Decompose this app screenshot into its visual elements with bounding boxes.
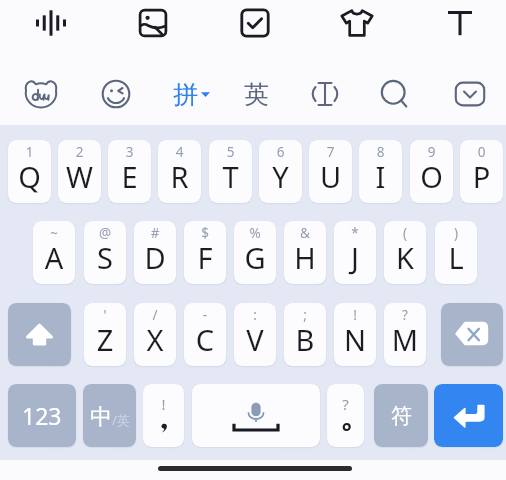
staticText: * <box>334 224 376 242</box>
button[interactable]: Search <box>368 68 420 120</box>
staticText: 5 <box>209 143 252 161</box>
staticText: ~ <box>33 224 75 242</box>
staticText: F <box>184 238 226 277</box>
button[interactable]: 1 <box>8 140 51 203</box>
staticText: Y <box>259 157 302 196</box>
staticText: $ <box>184 224 226 242</box>
button[interactable]: Space <box>192 384 320 447</box>
staticText: 中 <box>90 403 112 431</box>
button[interactable]: 7 <box>309 140 352 203</box>
staticText: A <box>33 238 75 277</box>
staticText: ? <box>327 394 364 414</box>
button[interactable]: 123 <box>8 384 76 447</box>
staticText: X <box>134 320 176 359</box>
button[interactable]: 2 <box>58 140 101 203</box>
button[interactable]: Enter <box>434 384 503 447</box>
staticText: V <box>234 320 276 359</box>
button[interactable]: ? <box>384 303 426 366</box>
staticText: 7 <box>309 143 352 161</box>
staticText: - <box>184 306 226 324</box>
staticText: N <box>334 320 376 359</box>
staticText: 0 <box>460 143 503 161</box>
button[interactable]: Cursor <box>299 68 351 120</box>
button[interactable]: ( <box>384 221 426 284</box>
staticText: C <box>184 320 226 359</box>
button[interactable]: Tasks <box>231 0 279 46</box>
staticText: @ <box>84 224 126 242</box>
button[interactable]: 英 <box>230 68 282 120</box>
button[interactable]: / <box>134 303 176 366</box>
button[interactable]: $ <box>184 221 226 284</box>
staticText: 符 <box>391 403 412 429</box>
button[interactable]: @ <box>84 221 126 284</box>
button[interactable]: 中 <box>83 384 136 447</box>
staticText: 3 <box>108 143 151 161</box>
staticText: G <box>234 238 276 277</box>
button[interactable]: # <box>134 221 176 284</box>
button[interactable]: 6 <box>259 140 302 203</box>
staticText: 9 <box>410 143 453 161</box>
button[interactable]: 3 <box>108 140 151 203</box>
staticText: # <box>134 224 176 242</box>
staticText: O <box>410 157 453 196</box>
button[interactable]: - <box>184 303 226 366</box>
button[interactable]: Images <box>129 0 177 46</box>
button[interactable]: Skin <box>333 0 381 46</box>
staticText: K <box>384 238 426 277</box>
staticText: B <box>284 320 326 359</box>
button[interactable]: ~ <box>33 221 75 284</box>
staticText: /英 <box>112 411 130 429</box>
button[interactable]: Voice input <box>27 0 75 46</box>
button[interactable]: ! <box>334 303 376 366</box>
button[interactable]: 4 <box>158 140 201 203</box>
staticText: L <box>435 238 477 277</box>
staticText: Z <box>84 320 126 359</box>
staticText: 4 <box>158 143 201 161</box>
button[interactable]: 5 <box>209 140 252 203</box>
staticText: 英 <box>244 79 269 110</box>
button[interactable]: 拼 <box>161 68 221 120</box>
button[interactable]: Text style <box>436 0 484 46</box>
button[interactable]: ? <box>327 384 364 447</box>
staticText: / <box>134 306 176 324</box>
button[interactable]: ! <box>143 384 184 447</box>
staticText: ) <box>435 224 477 242</box>
button[interactable]: ) <box>435 221 477 284</box>
button[interactable]: Backspace <box>441 303 503 366</box>
button[interactable]: Shift <box>8 303 71 366</box>
button[interactable]: : <box>234 303 276 366</box>
staticText: R <box>158 157 201 196</box>
staticText: 6 <box>259 143 302 161</box>
staticText: J <box>334 238 376 277</box>
staticText: M <box>384 320 426 359</box>
staticText: ' <box>84 306 126 324</box>
staticText: T <box>209 157 252 196</box>
staticText: 2 <box>58 143 101 161</box>
staticText: I <box>359 157 402 196</box>
staticText: Q <box>8 157 51 196</box>
button[interactable]: Emoji <box>90 68 142 120</box>
staticText: ? <box>384 306 426 324</box>
button[interactable]: % <box>234 221 276 284</box>
button[interactable]: 0 <box>460 140 503 203</box>
staticText: ! <box>143 394 184 414</box>
staticText: H <box>284 238 326 277</box>
button[interactable]: 9 <box>410 140 453 203</box>
button[interactable]: & <box>284 221 326 284</box>
staticText: 1 <box>8 143 51 161</box>
button[interactable]: Hide keyboard <box>444 68 496 120</box>
staticText: 拼 <box>173 79 198 110</box>
button[interactable]: 8 <box>359 140 402 203</box>
button[interactable]: 符 <box>374 384 428 447</box>
staticText: W <box>58 157 101 196</box>
staticText: U <box>309 157 352 196</box>
staticText: P <box>460 157 503 196</box>
button[interactable]: ; <box>284 303 326 366</box>
staticText: ! <box>334 306 376 324</box>
staticText: E <box>108 157 151 196</box>
button[interactable]: ' <box>84 303 126 366</box>
staticText: : <box>234 306 276 324</box>
button[interactable]: * <box>334 221 376 284</box>
button[interactable]: Baidu <box>15 68 67 120</box>
staticText: D <box>134 238 176 277</box>
